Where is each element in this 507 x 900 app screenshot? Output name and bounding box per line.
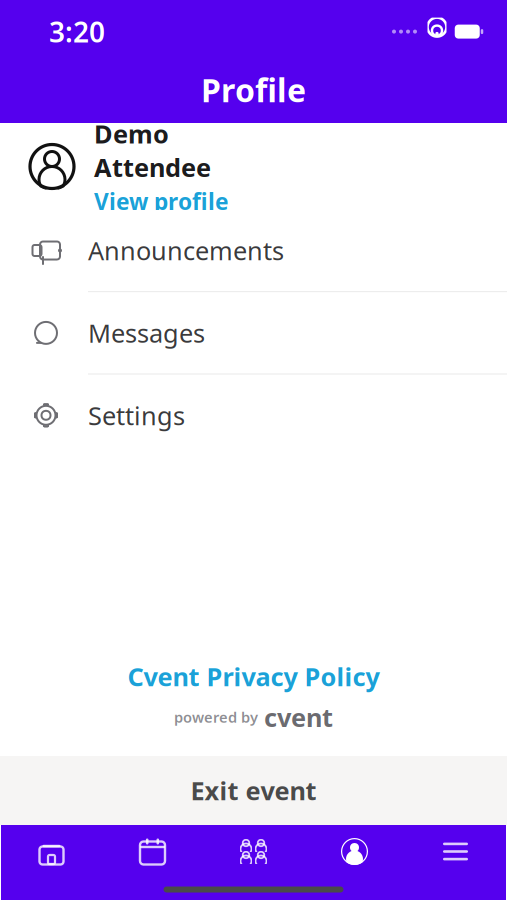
staticText: Cvent Privacy Policy <box>127 660 379 693</box>
staticText: Announcements <box>88 234 284 267</box>
button[interactable]: Schedule <box>102 830 203 872</box>
staticText: 3:20 <box>49 13 105 50</box>
staticText: Settings <box>88 398 185 432</box>
button[interactable]: Cvent Privacy Policy <box>107 656 399 697</box>
staticText: Profile <box>201 68 306 111</box>
staticText: Exit event <box>190 774 316 807</box>
staticText: Demo Attendee <box>94 117 211 184</box>
button[interactable]: Messages <box>0 292 507 373</box>
button[interactable]: Demo Attendee <box>0 123 507 210</box>
staticText: Messages <box>88 316 205 350</box>
button[interactable]: Exit event <box>0 756 507 825</box>
button[interactable]: More <box>405 830 506 872</box>
staticText: powered by <box>174 707 258 727</box>
button[interactable]: Announcements <box>0 210 507 291</box>
button[interactable]: Profile <box>304 830 405 872</box>
staticText: cvent <box>264 700 333 734</box>
button[interactable]: Settings <box>0 375 507 456</box>
button[interactable]: Home <box>1 830 102 872</box>
staticText: View profile <box>94 186 229 216</box>
button[interactable]: Attendees <box>203 830 304 872</box>
